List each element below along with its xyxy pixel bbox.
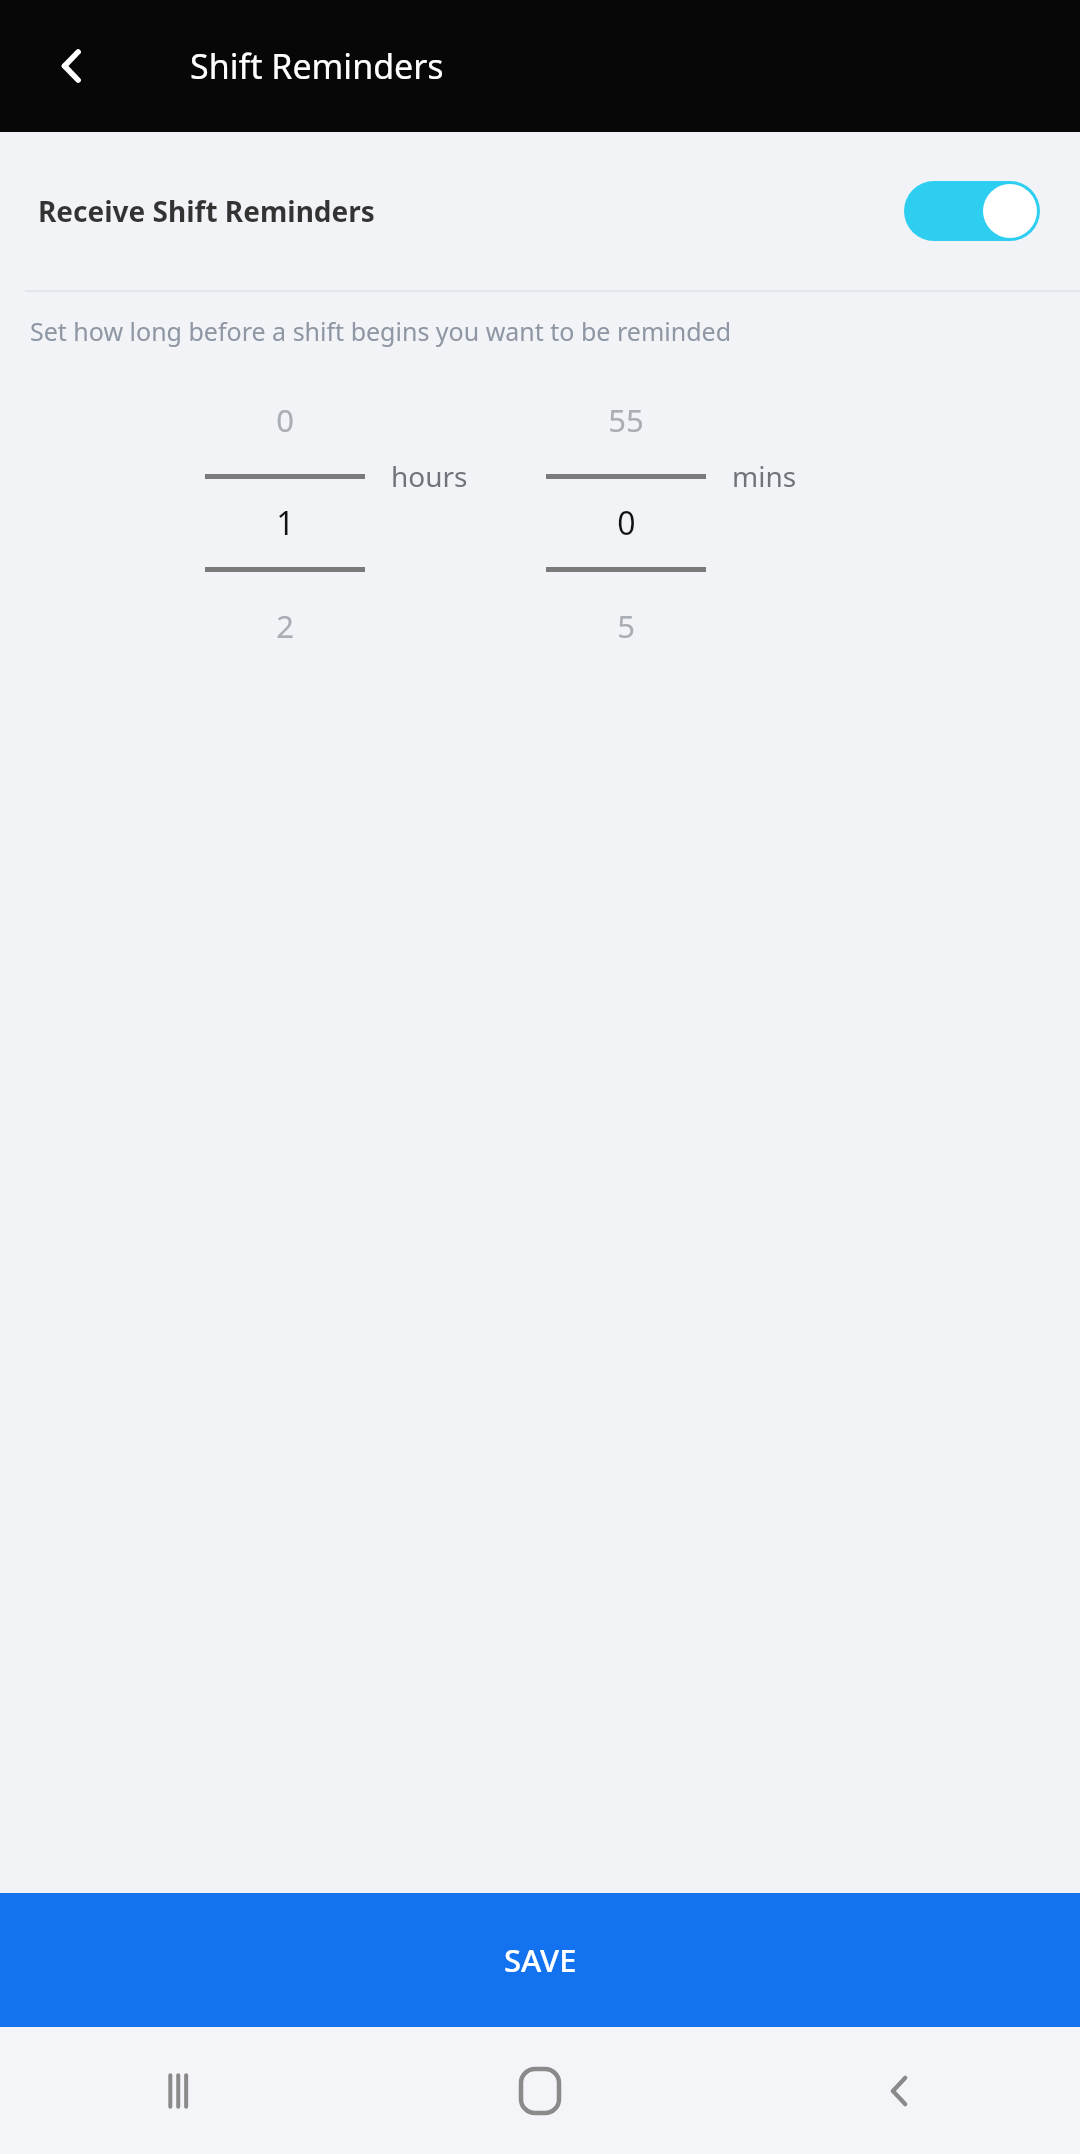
button[interactable]: 0 [205, 384, 365, 662]
other: Receive Shift Reminders toggle [904, 181, 1040, 241]
staticText: 5 [617, 605, 635, 647]
button[interactable]: Recents [0, 2027, 360, 2154]
staticText: Receive Shift Reminders [38, 192, 904, 230]
staticText: mins [732, 457, 797, 495]
staticText: 55 [608, 399, 644, 441]
staticText: 0 [617, 501, 636, 545]
staticText: 0 [276, 399, 294, 441]
button[interactable]: Receive Shift Reminders [0, 132, 1080, 290]
button[interactable]: Home [360, 2027, 720, 2154]
button[interactable]: Back [720, 2027, 1080, 2154]
staticText: 1 [276, 501, 295, 545]
button[interactable]: SAVE [0, 1893, 1080, 2027]
button[interactable]: 55 [546, 384, 706, 662]
staticText: Shift Reminders [190, 43, 444, 89]
button[interactable]: Back [22, 16, 122, 116]
staticText: Set how long before a shift begins you w… [30, 314, 732, 348]
staticText: SAVE [504, 1939, 577, 1981]
staticText: 2 [276, 605, 294, 647]
staticText: hours [391, 457, 468, 495]
